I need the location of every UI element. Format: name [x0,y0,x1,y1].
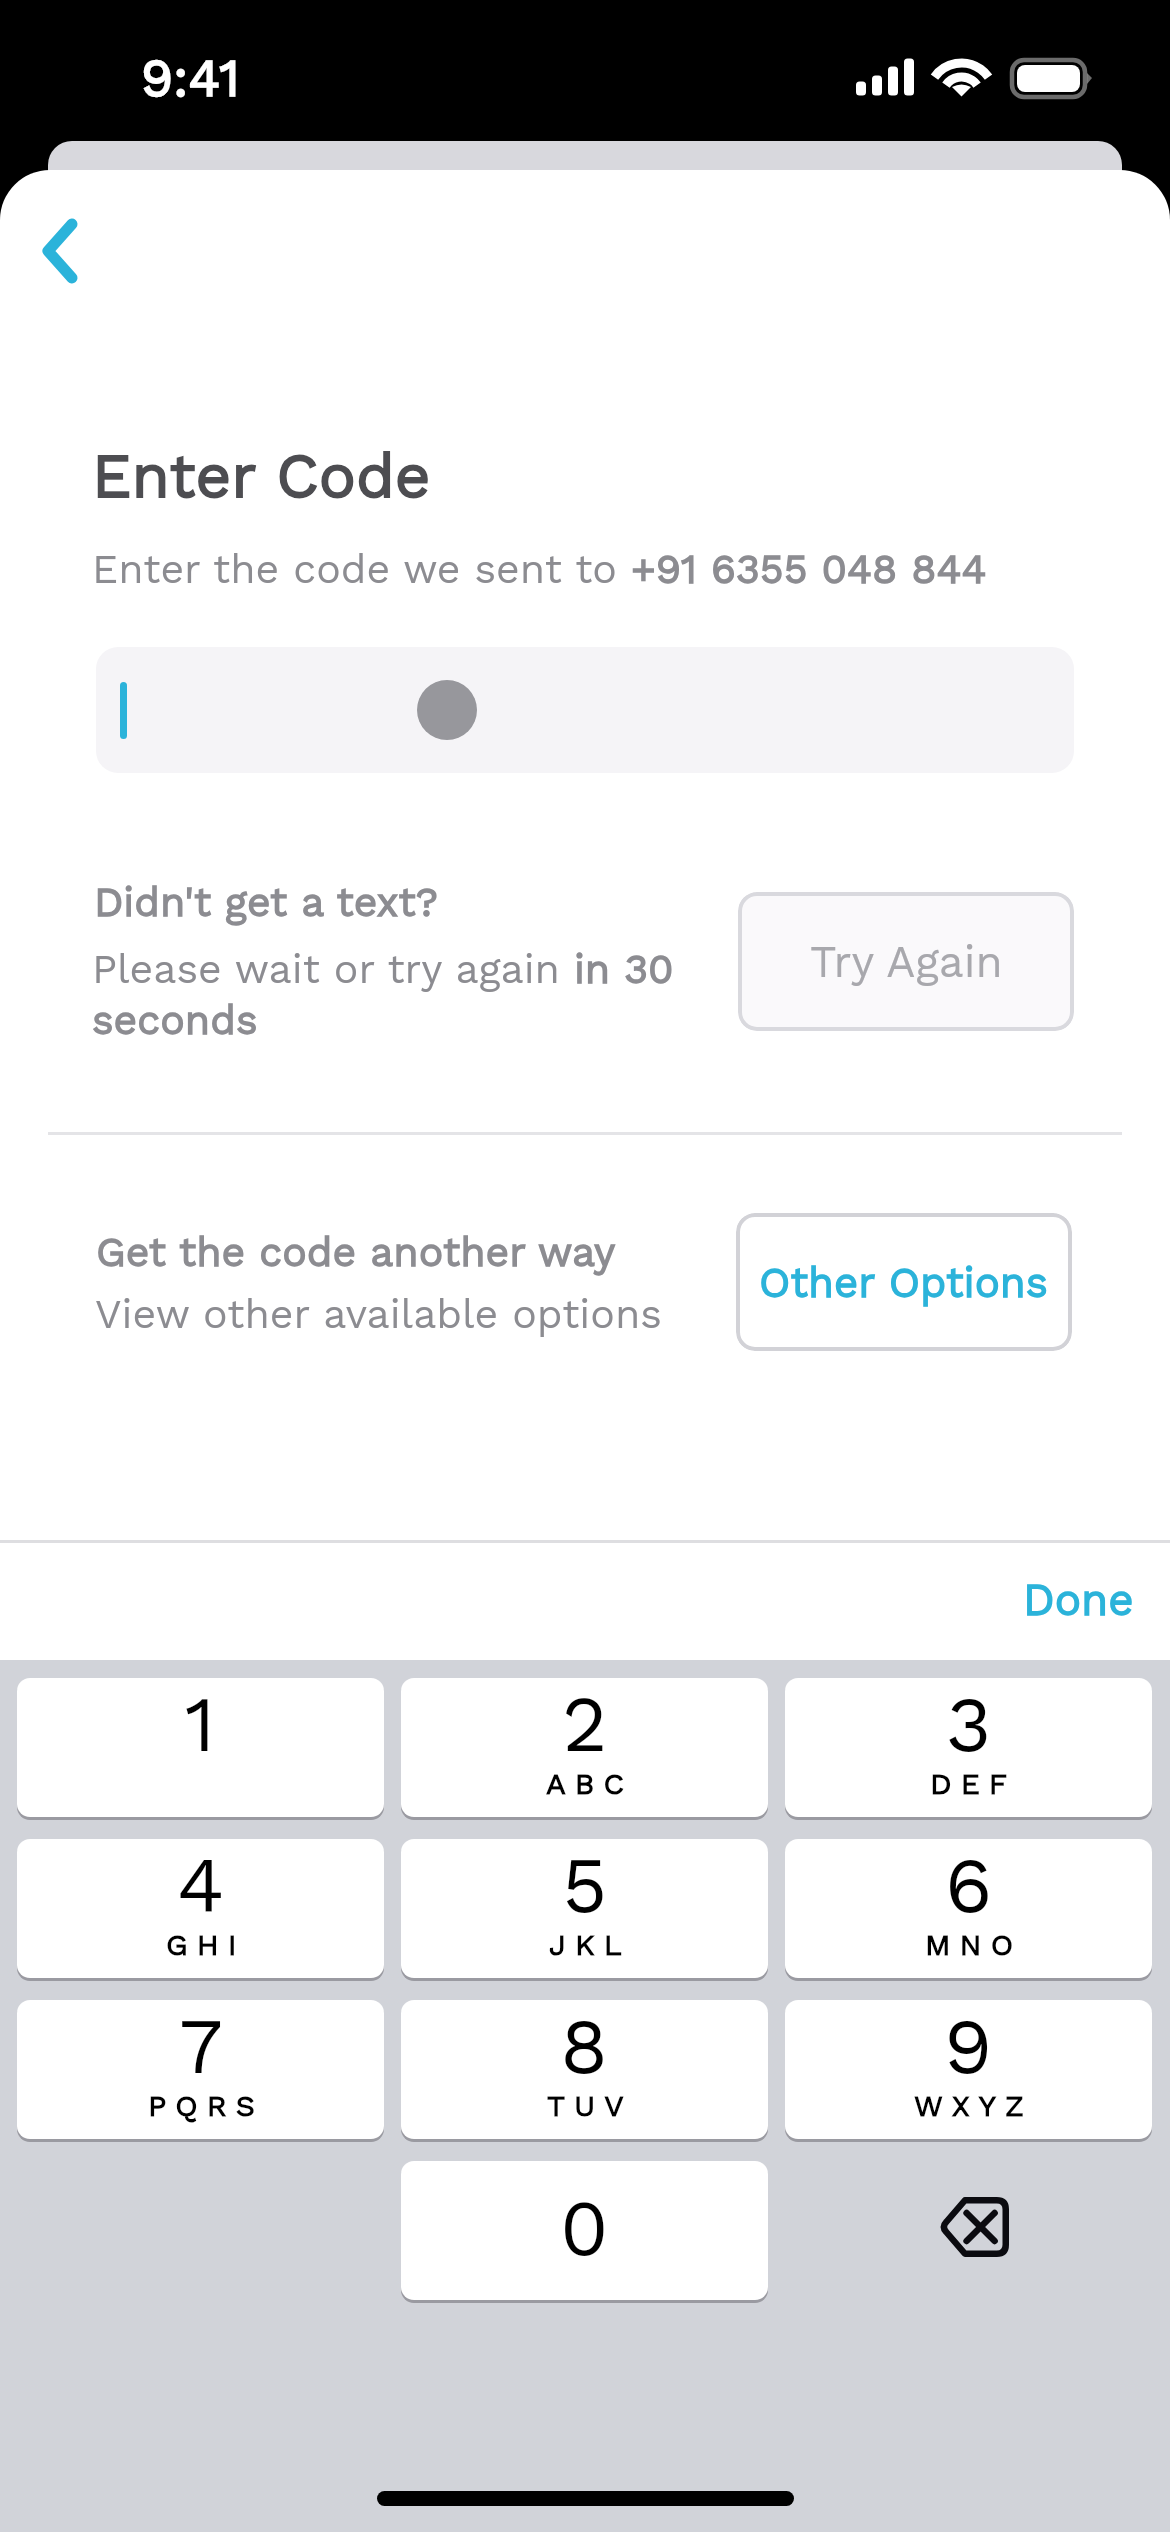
button[interactable]: 6 [785,1839,1152,1978]
staticText: 6 [945,1839,993,1930]
button[interactable]: 4 [17,1839,384,1978]
staticText: Other Options [759,1258,1049,1307]
button[interactable]: 7 [17,2000,384,2139]
staticText: DEF [930,1766,1017,1801]
button[interactable]: Done [998,1560,1158,1640]
button[interactable]: 1 [17,1678,384,1817]
staticText: JKL [549,1927,631,1962]
button[interactable]: 3 [785,1678,1152,1817]
button[interactable]: 8 [401,2000,768,2139]
staticText: Try Again [810,936,1003,988]
staticText: WXYZ [914,2088,1033,2123]
staticText: 9 [944,2000,993,2091]
staticText: Please wait or try again in 30 seconds [92,945,692,1044]
button[interactable]: 0 [401,2161,768,2300]
button[interactable]: Back [16,207,104,295]
staticText: 8 [560,2000,609,2091]
staticText: MNO [925,1927,1023,1962]
staticText: PQRS [148,2088,264,2123]
button[interactable]: 2 [401,1678,768,1817]
staticText: 9:41 [141,48,240,109]
button[interactable]: 9 [785,2000,1152,2139]
staticText: Enter the code we sent to +91 6355 048 8… [92,545,987,593]
staticText: TUV [547,2088,633,2123]
button[interactable]: 5 [401,1839,768,1978]
staticText: ABC [546,1766,633,1801]
staticText: 7 [179,2000,223,2091]
staticText: 3 [946,1678,992,1769]
staticText: 1 [185,1678,216,1769]
button[interactable]: Backspace [790,2157,1157,2296]
button[interactable] [96,647,1074,773]
staticText: Get the code another way [96,1228,616,1276]
staticText: 4 [177,1839,225,1930]
staticText: Done [1023,1574,1134,1626]
button[interactable]: Other Options [736,1213,1072,1351]
staticText: GHI [166,1927,246,1962]
staticText: View other available options [95,1290,662,1338]
staticText: 5 [562,1839,608,1930]
staticText: 2 [562,1678,608,1769]
staticText: Didn't get a text? [94,878,438,926]
button[interactable]: Try Again [738,892,1074,1031]
staticText: Enter Code [92,439,431,512]
staticText: 0 [560,2182,609,2273]
